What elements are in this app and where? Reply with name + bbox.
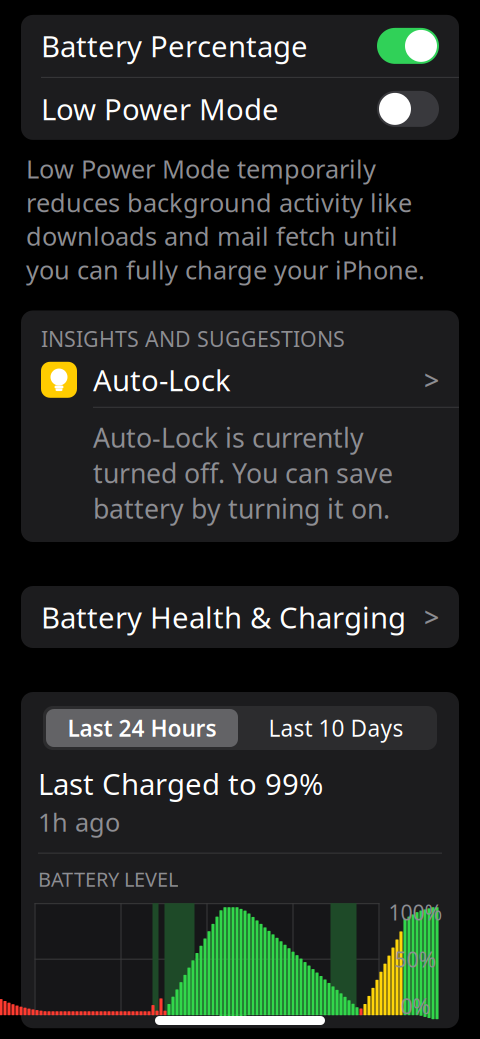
staticText: Last Charged to 99% xyxy=(38,764,323,803)
staticText: Last 24 Hours xyxy=(67,713,216,743)
button[interactable]: Battery Percentage xyxy=(21,15,459,77)
button[interactable]: Last 24 Hours xyxy=(46,709,238,747)
staticText: BATTERY LEVEL xyxy=(38,866,178,892)
staticText: Battery Health & Charging xyxy=(41,597,406,636)
staticText: Auto-Lock xyxy=(93,360,231,399)
button[interactable]: Auto-Lock xyxy=(21,353,459,407)
staticText: INSIGHTS AND SUGGESTIONS xyxy=(41,324,345,353)
staticText: 100% xyxy=(388,898,442,926)
staticText: Low Power Mode xyxy=(41,89,279,128)
staticText: Last 10 Days xyxy=(268,713,403,743)
button[interactable]: Battery Health & Charging xyxy=(21,586,459,648)
button[interactable]: Low Power Mode xyxy=(21,78,459,140)
staticText: 1h ago xyxy=(38,805,120,839)
staticText: 0% xyxy=(400,992,430,1020)
staticText: Battery Percentage xyxy=(41,26,308,65)
button[interactable]: Last 10 Days xyxy=(238,709,434,747)
staticText: 50% xyxy=(394,945,436,973)
staticText: Auto-Lock is currently turned off. You c… xyxy=(93,420,393,526)
staticText: > xyxy=(424,362,439,397)
staticText: > xyxy=(424,599,439,635)
staticText: Low Power Mode temporarily reduces backg… xyxy=(26,152,425,286)
